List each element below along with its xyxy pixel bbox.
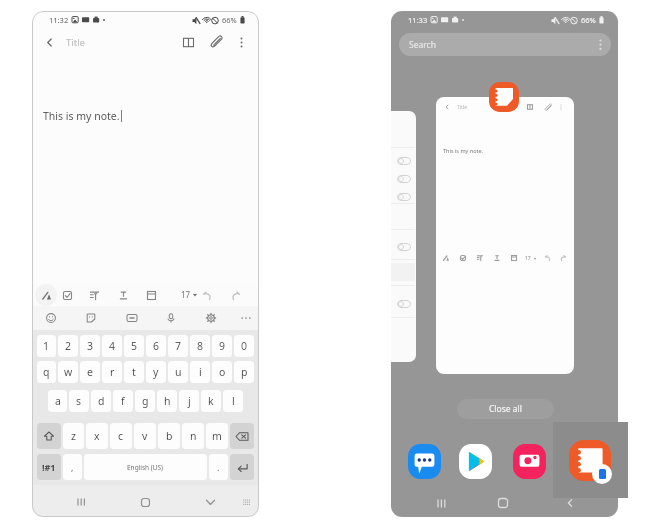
button[interactable]: Recents	[430, 492, 452, 514]
button[interactable]: 1	[37, 335, 56, 357]
button[interactable]: Recents	[70, 491, 92, 513]
button[interactable]: t	[124, 361, 144, 383]
button[interactable]: Symbols	[37, 454, 61, 480]
button[interactable]: Pen	[440, 252, 452, 264]
button[interactable]: f	[113, 390, 133, 412]
button[interactable]: English (US)	[84, 454, 207, 480]
button[interactable]: g	[135, 390, 155, 412]
button[interactable]: l	[223, 390, 243, 412]
staticText: 8	[197, 339, 204, 353]
button[interactable]: v	[134, 423, 156, 449]
button[interactable]: Insert	[142, 286, 160, 304]
button[interactable]: 2	[58, 335, 78, 357]
staticText: w	[64, 365, 73, 379]
button[interactable]: App	[459, 444, 492, 479]
button[interactable]: App	[408, 444, 441, 479]
button[interactable]: Hide keyboard	[199, 491, 221, 513]
button[interactable]: Reading view	[177, 31, 199, 53]
staticText: f	[121, 394, 125, 408]
button[interactable]: Voice input	[162, 309, 180, 327]
button[interactable]: u	[168, 361, 188, 383]
button[interactable]: Home	[492, 492, 514, 514]
button[interactable]: Back	[441, 101, 453, 113]
button[interactable]: q	[37, 361, 56, 383]
staticText: 11:33	[408, 15, 428, 25]
button[interactable]: r	[102, 361, 122, 383]
button[interactable]: App	[513, 444, 546, 479]
button[interactable]: Enter	[230, 454, 254, 480]
button[interactable]: 8	[190, 335, 210, 357]
button[interactable]: d	[91, 390, 111, 412]
button[interactable]: 4	[102, 335, 122, 357]
button[interactable]: Text style	[491, 252, 503, 264]
button[interactable]: h	[157, 390, 177, 412]
staticText: d	[98, 394, 105, 408]
button[interactable]: Back	[559, 492, 581, 514]
button[interactable]: Checklist	[457, 252, 469, 264]
button[interactable]: 17	[178, 286, 200, 303]
button[interactable]: i	[190, 361, 210, 383]
button[interactable]: Insert	[508, 252, 520, 264]
button[interactable]: More	[237, 309, 255, 327]
button[interactable]: Redo	[557, 252, 569, 264]
button[interactable]: Attach	[206, 31, 228, 53]
button[interactable]: p	[234, 361, 254, 383]
button[interactable]: k	[201, 390, 221, 412]
button[interactable]: Search	[399, 33, 611, 56]
button[interactable]: Redo	[226, 286, 244, 304]
button[interactable]: j	[179, 390, 199, 412]
button[interactable]: Undo	[198, 286, 216, 304]
button[interactable]: x	[86, 423, 108, 449]
staticText: s	[76, 394, 82, 408]
staticText: a	[55, 394, 61, 408]
button[interactable]: Checklist	[58, 286, 76, 304]
button[interactable]: Stickers	[82, 309, 100, 327]
staticText: 0	[241, 339, 248, 353]
button[interactable]: 6	[146, 335, 166, 357]
button[interactable]: ,	[63, 454, 82, 480]
staticText: l	[232, 394, 235, 408]
button[interactable]: y	[146, 361, 166, 383]
button[interactable]: Back	[38, 31, 60, 53]
button[interactable]: Paragraph	[85, 286, 103, 304]
button[interactable]: Pen	[35, 284, 57, 306]
button[interactable]: Keyboard layout	[237, 493, 255, 511]
button[interactable]: 3	[80, 335, 100, 357]
button[interactable]: a	[48, 390, 67, 412]
button[interactable]: Text style	[114, 286, 132, 304]
button[interactable]: More options	[230, 31, 252, 53]
button[interactable]: .	[209, 454, 228, 480]
staticText: e	[87, 365, 93, 379]
button[interactable]: 7	[168, 335, 188, 357]
button[interactable]: Undo	[542, 252, 554, 264]
button[interactable]: Settings	[202, 309, 220, 327]
button[interactable]: s	[69, 390, 89, 412]
button[interactable]: c	[110, 423, 132, 449]
button[interactable]: o	[212, 361, 232, 383]
button[interactable]: w	[58, 361, 78, 383]
button[interactable]: Home	[134, 491, 156, 513]
button[interactable]: Attach	[542, 101, 554, 113]
button[interactable]: 9	[212, 335, 232, 357]
button[interactable]: More options	[555, 101, 567, 113]
button[interactable]: Samsung Notes	[569, 440, 611, 481]
staticText: v	[142, 429, 148, 443]
staticText: 3	[87, 339, 94, 353]
button[interactable]: b	[158, 423, 180, 449]
staticText: g	[142, 394, 149, 408]
button[interactable]: Emoji	[42, 309, 60, 327]
button[interactable]: Close all	[457, 399, 554, 419]
button[interactable]: Shift	[37, 423, 61, 449]
button[interactable]: GIF	[123, 309, 141, 327]
button[interactable]: n	[182, 423, 204, 449]
button[interactable]: Reading view	[524, 101, 536, 113]
button[interactable]: z	[63, 423, 84, 449]
button[interactable]: 0	[234, 335, 254, 357]
button[interactable]: Backspace	[230, 423, 254, 449]
staticText: n	[190, 429, 197, 443]
button[interactable]: Paragraph	[474, 252, 486, 264]
button[interactable]: 5	[124, 335, 144, 357]
button[interactable]: e	[80, 361, 100, 383]
button[interactable]: Samsung Notes	[489, 82, 519, 112]
button[interactable]: m	[206, 423, 228, 449]
